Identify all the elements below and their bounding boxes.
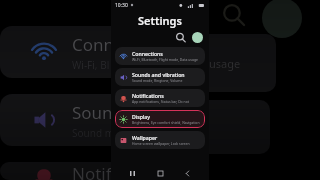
staticText: Wi-Fi, Bl	[72, 58, 110, 72]
button[interactable]: Connections	[115, 47, 205, 65]
button[interactable]: Account profile	[192, 32, 203, 43]
staticText: Notifications	[132, 92, 164, 99]
staticText: Wi-Fi, Bluetooth, Flight mode, Data usag…	[132, 57, 198, 62]
staticText: 10:30	[115, 2, 128, 9]
button[interactable]: Search settings	[175, 32, 186, 43]
staticText: Sounds and vibration	[132, 71, 185, 78]
button[interactable]: Back	[181, 167, 194, 180]
button[interactable]: Display	[115, 110, 205, 128]
button[interactable]: Recents	[126, 167, 139, 180]
staticText: Conne	[72, 33, 124, 56]
staticText: App notifications, Status bar, Do not di…	[132, 99, 201, 104]
staticText: Wallpaper	[132, 134, 158, 141]
staticText: ta usage	[196, 56, 241, 71]
button[interactable]: Notifications	[115, 89, 205, 107]
button[interactable]: Home	[154, 167, 167, 180]
staticText: Sound	[72, 101, 124, 124]
staticText: Display	[132, 113, 151, 120]
staticText: Sound m	[72, 126, 114, 140]
button[interactable]: Search	[220, 2, 246, 28]
button[interactable]: Account	[262, 0, 302, 38]
staticText: Connections	[132, 50, 163, 57]
button[interactable]: Sounds and vibration	[115, 68, 205, 86]
staticText: Notifi	[72, 162, 116, 180]
button[interactable]: Wallpaper	[115, 131, 205, 149]
staticText: Sound mode, Ringtone, Volume	[132, 78, 183, 83]
staticText: Brightness, Eye comfort shield, Navigati…	[132, 120, 201, 125]
staticText: Settings	[138, 13, 182, 28]
staticText: Home screen wallpaper, Lock screen wallp…	[132, 141, 201, 146]
